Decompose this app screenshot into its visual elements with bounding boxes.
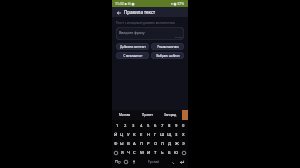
staticText: В bbox=[127, 141, 130, 147]
staticText: Ь bbox=[161, 150, 164, 156]
button[interactable]: Ж bbox=[173, 139, 180, 148]
button[interactable]: С возможност bbox=[116, 52, 149, 59]
button[interactable]: У bbox=[125, 130, 131, 139]
button[interactable]: 4 bbox=[137, 121, 145, 130]
button[interactable]: Загород bbox=[159, 110, 182, 120]
button[interactable]: Р bbox=[145, 139, 152, 148]
button[interactable]: Москва bbox=[114, 110, 136, 120]
staticText: 1 bbox=[116, 123, 119, 129]
button[interactable]: Д bbox=[166, 139, 173, 148]
button[interactable]: Back bbox=[115, 9, 122, 16]
button[interactable]: 7 bbox=[159, 121, 166, 130]
button[interactable]: 2 bbox=[121, 121, 129, 130]
button[interactable]: К bbox=[131, 130, 138, 139]
staticText: Москва bbox=[119, 113, 131, 117]
button[interactable]: Б bbox=[166, 148, 173, 157]
staticText: 6 bbox=[154, 123, 157, 129]
staticText: Режим мозгово bbox=[157, 45, 179, 49]
button[interactable]: Е bbox=[138, 130, 145, 139]
button[interactable]: И bbox=[145, 148, 152, 157]
button[interactable]: Voice input bbox=[130, 157, 138, 166]
button[interactable]: 9 bbox=[173, 121, 180, 130]
staticText: Х bbox=[182, 132, 185, 138]
button[interactable]: Я bbox=[119, 148, 125, 157]
button[interactable]: 6 bbox=[152, 121, 159, 130]
staticText: М bbox=[140, 150, 144, 156]
button[interactable]: Щ bbox=[166, 130, 173, 139]
staticText: Привет bbox=[142, 113, 153, 117]
button[interactable]: 3 bbox=[129, 121, 137, 130]
staticText: Я bbox=[121, 150, 124, 156]
button[interactable]: Ы bbox=[119, 139, 125, 148]
staticText: Русский bbox=[148, 160, 160, 164]
staticText: И bbox=[147, 150, 151, 156]
staticText: 5 bbox=[147, 123, 150, 129]
button[interactable]: Выбрать шаблон bbox=[151, 52, 184, 59]
button[interactable]: Э bbox=[180, 139, 187, 148]
staticText: Ж bbox=[175, 141, 179, 147]
button[interactable]: . , bbox=[169, 157, 177, 166]
staticText: А bbox=[133, 141, 136, 147]
button[interactable]: Режим мозгово bbox=[151, 43, 184, 50]
button[interactable]: П bbox=[138, 139, 145, 148]
button[interactable]: 1 bbox=[113, 121, 121, 130]
button[interactable]: Ч bbox=[125, 148, 131, 157]
staticText: Добавить контекст bbox=[120, 45, 146, 49]
button[interactable]: В bbox=[125, 139, 131, 148]
button[interactable]: Добавить контекст bbox=[116, 43, 149, 50]
button[interactable]: Enter bbox=[177, 157, 186, 166]
staticText: 7 bbox=[161, 123, 164, 129]
button[interactable]: Русский bbox=[138, 157, 169, 166]
staticText: Правила текст bbox=[124, 9, 156, 15]
button[interactable]: Привет bbox=[136, 110, 159, 120]
staticText: Текст с исходный уровень выполнения bbox=[116, 21, 175, 25]
button[interactable]: Ю bbox=[173, 148, 180, 157]
staticText: У bbox=[127, 132, 130, 138]
staticText: ?1○ bbox=[115, 160, 121, 164]
button[interactable]: Х bbox=[180, 130, 187, 139]
staticText: Ш bbox=[160, 132, 165, 138]
staticText: 4 bbox=[140, 123, 143, 129]
button[interactable]: Л bbox=[159, 139, 166, 148]
button[interactable]: 8 bbox=[166, 121, 173, 130]
button[interactable]: Ф bbox=[113, 139, 119, 148]
button[interactable]: Й bbox=[113, 130, 119, 139]
staticText: 3 bbox=[132, 123, 135, 129]
button[interactable]: 0 bbox=[180, 121, 187, 130]
button[interactable]: Введите фразу bbox=[116, 27, 184, 40]
button[interactable]: О bbox=[152, 139, 159, 148]
staticText: Р bbox=[147, 141, 150, 147]
button[interactable]: А bbox=[131, 139, 138, 148]
staticText: Д bbox=[168, 141, 172, 147]
staticText: Ч bbox=[127, 150, 130, 156]
staticText: Ц bbox=[120, 132, 124, 138]
staticText: С bbox=[133, 150, 136, 156]
button[interactable]: Shift bbox=[113, 148, 119, 157]
button[interactable]: З bbox=[173, 130, 180, 139]
staticText: 11:32 ▪ ✉ ● bbox=[115, 1, 135, 6]
button[interactable]: Т bbox=[152, 148, 159, 157]
staticText: 2 bbox=[124, 123, 127, 129]
staticText: 8 bbox=[168, 123, 171, 129]
button[interactable]: Ш bbox=[159, 130, 166, 139]
button[interactable]: Emoji bbox=[122, 157, 130, 166]
staticText: Выбрать шаблон bbox=[156, 54, 180, 58]
staticText: З bbox=[175, 132, 178, 138]
button[interactable]: Ц bbox=[119, 130, 125, 139]
button[interactable]: Ь bbox=[159, 148, 166, 157]
button[interactable]: С bbox=[131, 148, 138, 157]
staticText: К bbox=[133, 132, 136, 138]
staticText: Б bbox=[168, 150, 171, 156]
button[interactable]: М bbox=[138, 148, 145, 157]
button[interactable]: Г bbox=[152, 130, 159, 139]
staticText: Н bbox=[147, 132, 151, 138]
staticText: Й bbox=[114, 132, 118, 138]
button[interactable]: ?1○ bbox=[114, 157, 122, 166]
staticText: Ю bbox=[174, 150, 179, 156]
staticText: . , bbox=[172, 160, 175, 164]
button[interactable]: 5 bbox=[145, 121, 152, 130]
staticText: ▾ ● 57% bbox=[171, 1, 185, 6]
button[interactable]: Н bbox=[145, 130, 152, 139]
button[interactable]: Backspace bbox=[180, 148, 187, 157]
